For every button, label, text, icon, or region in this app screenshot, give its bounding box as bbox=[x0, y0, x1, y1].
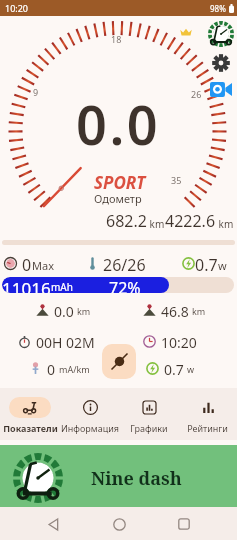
staticText: mAh bbox=[51, 280, 73, 293]
button[interactable]: Рейтинги bbox=[178, 388, 237, 440]
staticText: Max bbox=[32, 258, 54, 273]
button[interactable]: Record video bbox=[210, 82, 232, 97]
staticText: mA/km bbox=[59, 363, 90, 375]
staticText: Графики bbox=[130, 422, 168, 434]
button[interactable]: Settings bbox=[212, 54, 230, 72]
staticText: km bbox=[192, 305, 206, 317]
button[interactable]: Показатели bbox=[0, 388, 60, 440]
staticText: 0.7 bbox=[195, 254, 218, 272]
staticText: 10:20 bbox=[5, 2, 29, 14]
staticText: Информация bbox=[61, 422, 119, 434]
button[interactable]: Графики bbox=[119, 388, 178, 440]
staticText: km bbox=[77, 305, 91, 317]
staticText: km bbox=[216, 217, 234, 231]
staticText: SPORT bbox=[94, 171, 146, 194]
button[interactable]: Recent apps bbox=[171, 511, 197, 537]
staticText: 35 bbox=[171, 174, 182, 186]
button[interactable]: Home bbox=[106, 511, 132, 537]
staticText: 682.2 bbox=[106, 210, 147, 232]
staticText: 0 bbox=[22, 254, 32, 272]
staticText: Nine dash bbox=[91, 466, 182, 491]
staticText: 26 bbox=[191, 88, 202, 100]
staticText: 46.8 bbox=[161, 302, 189, 318]
button[interactable]: Connect scooter bbox=[102, 344, 136, 379]
button[interactable]: Nine dash bbox=[0, 445, 237, 507]
staticText: Одометр bbox=[94, 191, 142, 206]
staticText: Рейтинги bbox=[187, 422, 228, 434]
staticText: 72% bbox=[109, 277, 141, 293]
staticText: 18 bbox=[111, 33, 122, 45]
staticText: 10:20 bbox=[161, 333, 197, 349]
staticText: 00H 02M bbox=[36, 333, 95, 349]
button[interactable]: Информация bbox=[60, 388, 119, 440]
staticText: 0.0 bbox=[54, 302, 74, 318]
staticText: w bbox=[187, 363, 195, 375]
staticText: 4222.6 bbox=[165, 210, 216, 232]
staticText: km bbox=[147, 217, 165, 231]
staticText: 0 bbox=[47, 360, 56, 376]
staticText: 98% bbox=[210, 3, 226, 14]
button[interactable]: Back bbox=[40, 511, 66, 537]
staticText: Показатели bbox=[3, 422, 58, 434]
staticText: 9 bbox=[33, 86, 39, 98]
staticText: 11016 bbox=[2, 277, 51, 293]
staticText: w bbox=[218, 258, 227, 273]
staticText: 26/26 bbox=[103, 254, 146, 272]
staticText: 0.7 bbox=[164, 360, 184, 376]
button[interactable]: App logo bbox=[208, 21, 234, 47]
staticText: 0.0 bbox=[76, 87, 161, 161]
